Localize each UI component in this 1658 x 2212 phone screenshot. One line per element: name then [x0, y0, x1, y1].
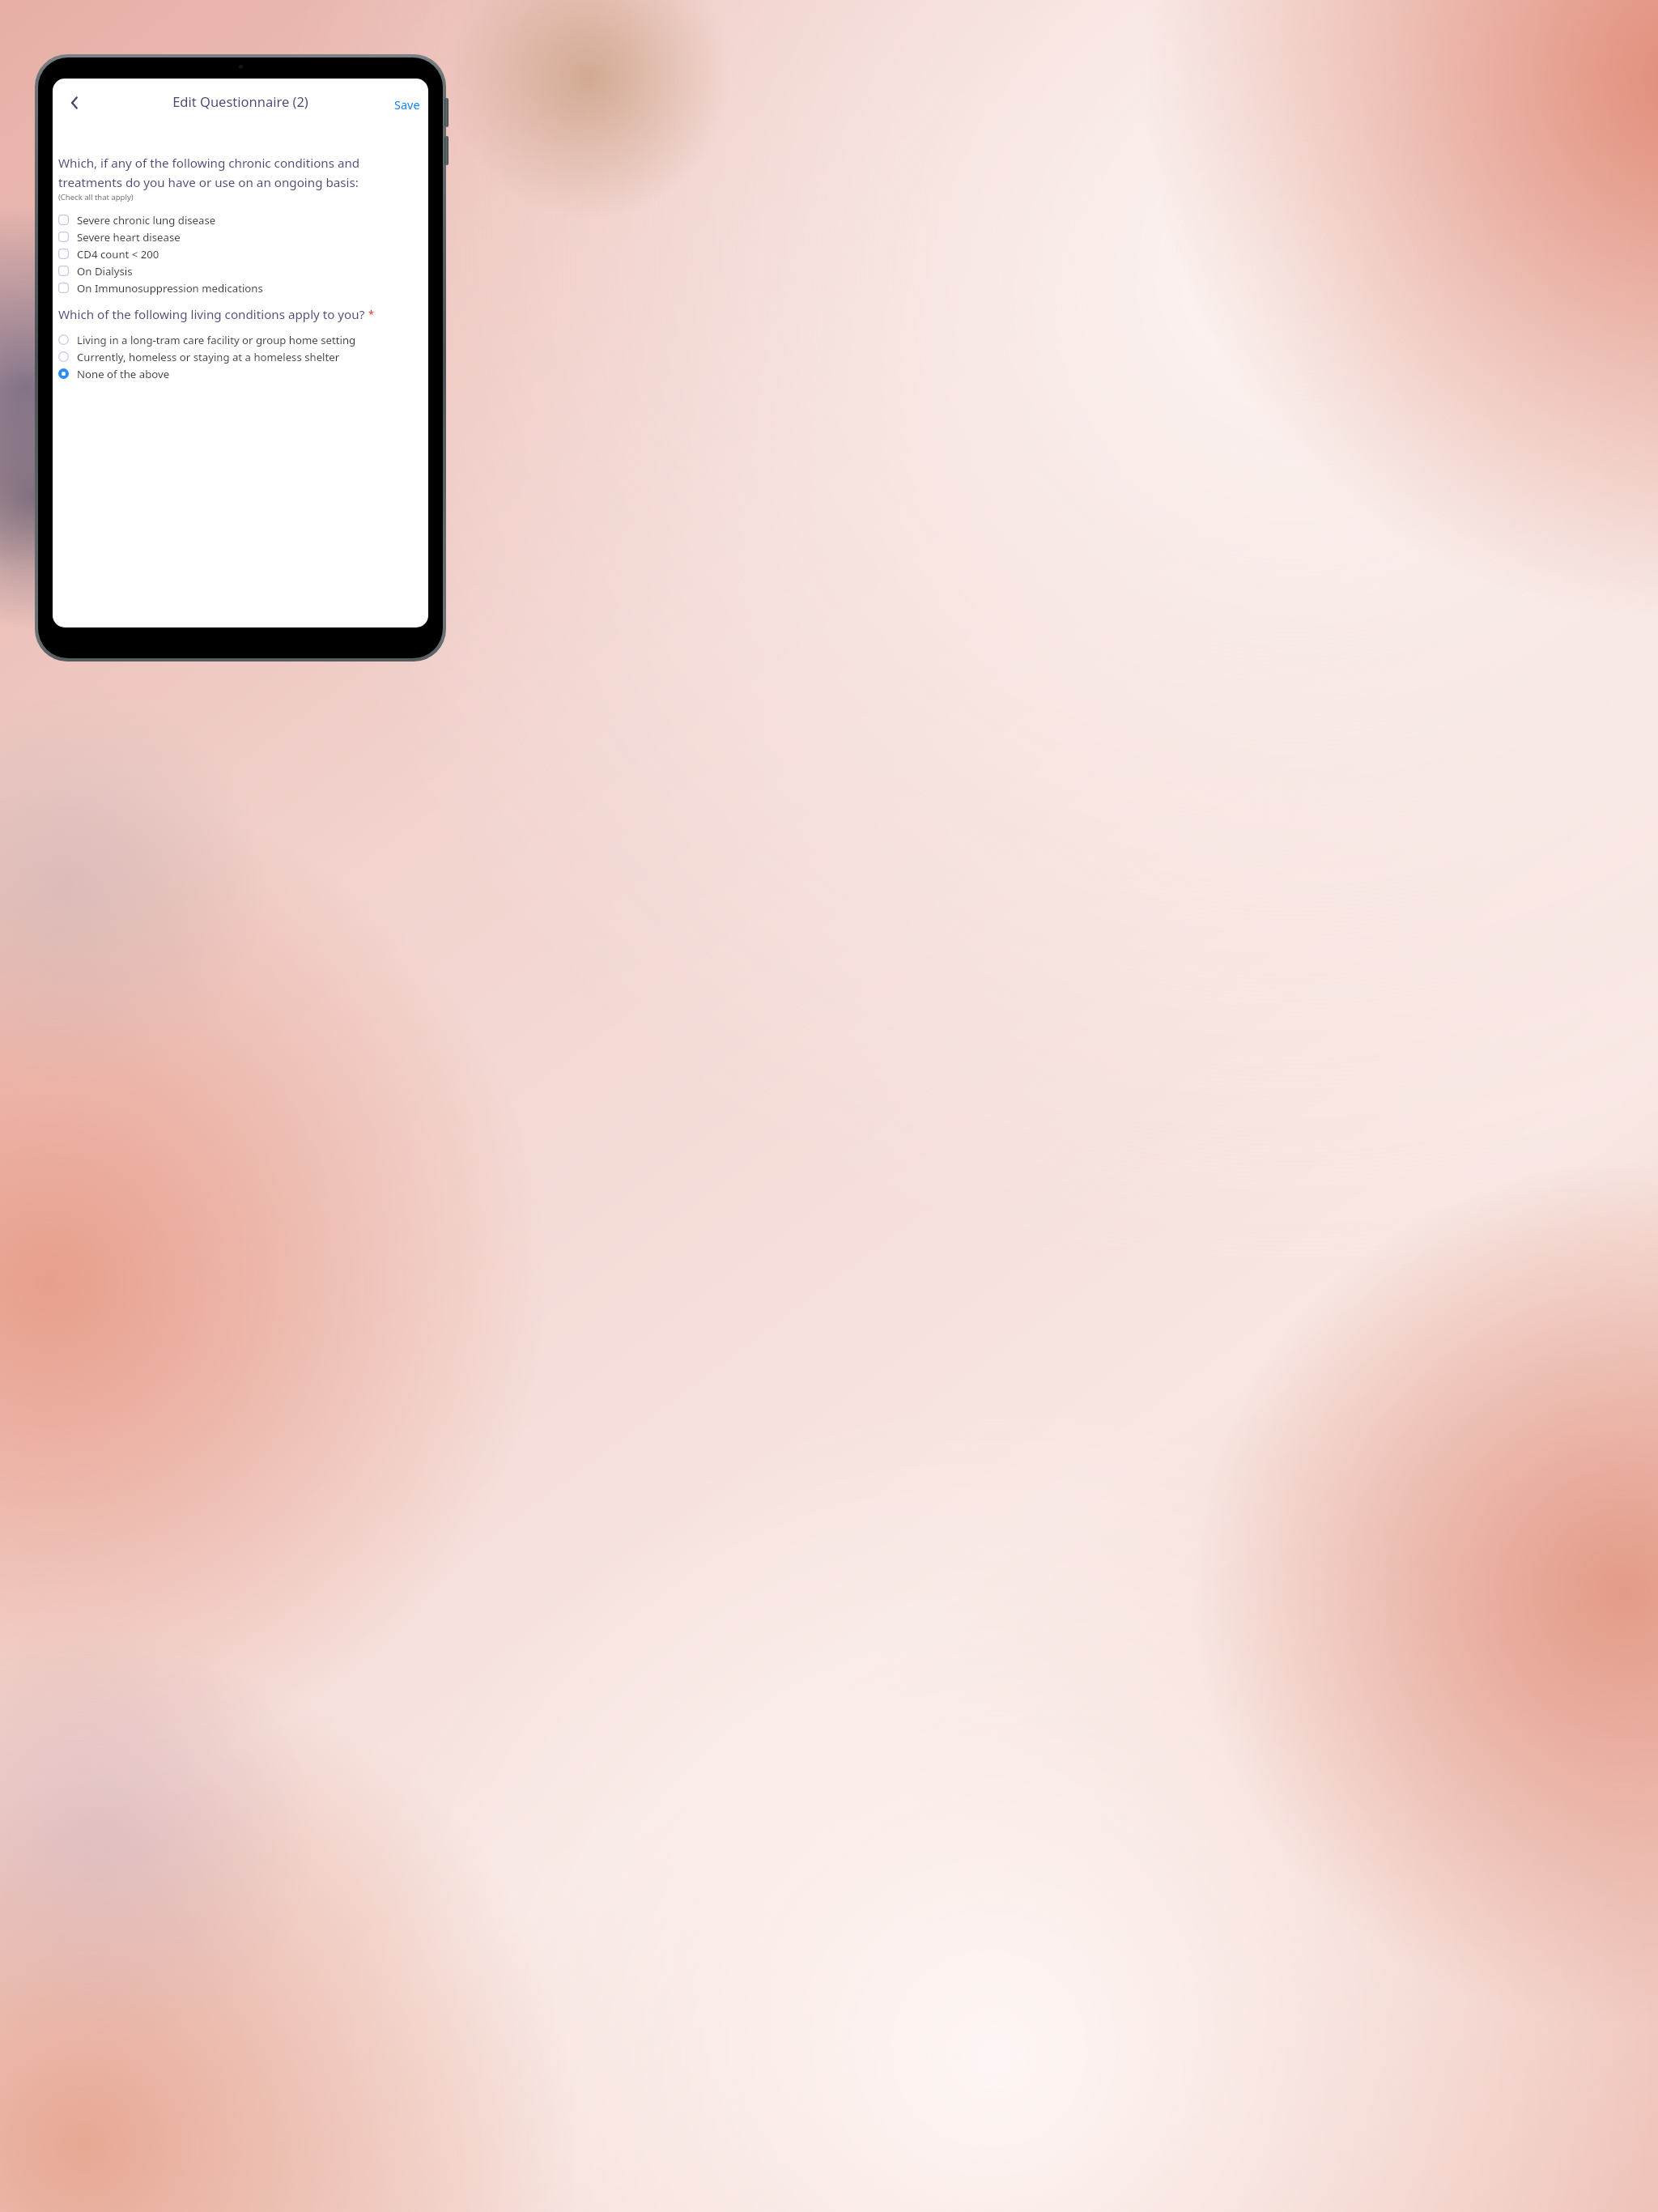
button[interactable]: Severe chronic lung disease [53, 211, 428, 228]
staticText: None of the above [77, 367, 170, 381]
staticText: * [368, 307, 375, 321]
staticText: On Immunosuppression medications [77, 281, 263, 296]
staticText: Severe heart disease [77, 230, 181, 245]
button[interactable]: Currently, homeless or staying at a home… [53, 348, 428, 365]
button[interactable]: On Dialysis [53, 262, 428, 279]
button[interactable]: Living in a long-tram care facility or g… [53, 331, 428, 348]
staticText: (Check all that apply) [58, 192, 134, 202]
staticText: Which, if any of the following chronic c… [58, 155, 417, 190]
staticText: Edit Questionnaire (2) [172, 92, 308, 110]
button[interactable]: Save [386, 91, 428, 117]
button[interactable]: Back [57, 85, 93, 121]
button[interactable]: Severe heart disease [53, 228, 428, 245]
staticText: Currently, homeless or staying at a home… [77, 350, 340, 364]
staticText: CD4 count < 200 [77, 247, 159, 262]
staticText: Save [394, 96, 420, 113]
staticText: Severe chronic lung disease [77, 213, 216, 228]
button[interactable]: None of the above [53, 365, 428, 382]
button[interactable]: On Immunosuppression medications [53, 279, 428, 296]
button[interactable]: CD4 count < 200 [53, 245, 428, 262]
staticText: On Dialysis [77, 264, 133, 279]
staticText: Which of the following living conditions… [58, 306, 365, 323]
staticText: Living in a long-tram care facility or g… [77, 333, 356, 347]
